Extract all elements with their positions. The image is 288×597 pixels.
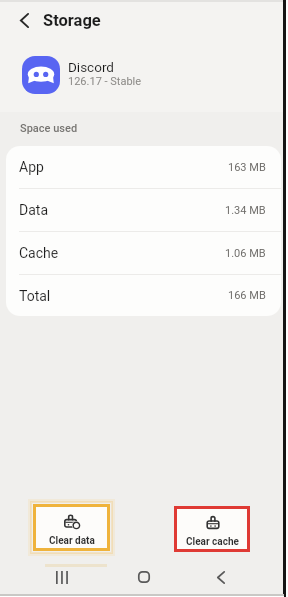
- button[interactable]: [126, 563, 162, 591]
- button[interactable]: [9, 5, 39, 35]
- staticText: Space used: [20, 122, 78, 135]
- staticText: Clear data: [49, 535, 95, 547]
- staticText: Cache: [19, 245, 59, 261]
- staticText: Clear cache: [186, 536, 239, 548]
- staticText: Discord: [68, 59, 114, 75]
- button[interactable]: Clear cache: [174, 506, 250, 552]
- staticText: Storage: [43, 11, 101, 30]
- staticText: 163 MB: [228, 161, 266, 174]
- staticText: 126.17 - Stable: [68, 75, 142, 88]
- staticText: Data: [19, 202, 48, 218]
- button[interactable]: [203, 563, 239, 591]
- staticText: Total: [19, 288, 51, 304]
- button[interactable]: Total: [6, 275, 281, 316]
- button[interactable]: [44, 563, 80, 591]
- button[interactable]: Cache: [6, 232, 281, 274]
- button[interactable]: Data: [6, 189, 281, 231]
- staticText: App: [19, 159, 44, 175]
- button[interactable]: Clear data: [33, 504, 110, 551]
- staticText: 1.06 MB: [225, 247, 266, 260]
- staticText: 166 MB: [228, 289, 266, 302]
- button[interactable]: App: [6, 146, 281, 188]
- staticText: 1.34 MB: [225, 204, 266, 217]
